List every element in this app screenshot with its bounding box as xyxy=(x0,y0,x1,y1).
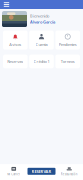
staticText: Reservas xyxy=(7,59,23,64)
button[interactable]: Menu xyxy=(2,0,11,9)
button[interactable]: Torneos xyxy=(55,55,80,68)
button[interactable]: Reservas xyxy=(3,55,28,68)
button[interactable]: Restauración xyxy=(55,167,83,176)
button[interactable]: Cuenta xyxy=(29,30,54,50)
staticText: Mi Carnet xyxy=(7,172,20,176)
button[interactable]: Mi Carnet xyxy=(0,167,27,176)
staticText: RESERVAR xyxy=(31,169,51,174)
button[interactable]: Avisos xyxy=(3,30,28,50)
staticText: Restauración xyxy=(61,172,78,176)
button[interactable]: Pendientes xyxy=(55,30,80,50)
button[interactable]: RESERVAR xyxy=(27,168,55,175)
button[interactable]: Crédito 1 xyxy=(29,55,54,68)
staticText: Avisos xyxy=(9,42,21,47)
staticText: Pendientes xyxy=(59,42,77,47)
staticText: Cuenta xyxy=(35,42,47,47)
staticText: Álvaro García xyxy=(30,19,55,25)
staticText: Bienvenido xyxy=(30,13,49,19)
staticText: Crédito 1 xyxy=(33,59,49,64)
staticText: Torneos xyxy=(61,59,75,64)
